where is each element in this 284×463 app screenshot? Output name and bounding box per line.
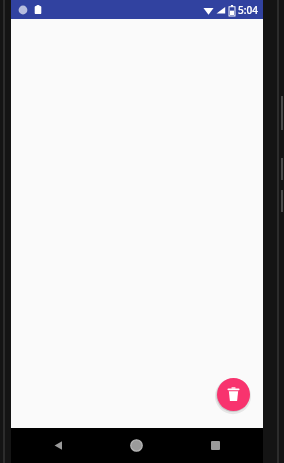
staticText: 5:04: [238, 3, 258, 17]
button[interactable]: Delete: [217, 378, 250, 411]
button[interactable]: Home: [97, 428, 176, 463]
button[interactable]: Back: [19, 428, 97, 463]
button[interactable]: Recent apps: [176, 428, 255, 463]
